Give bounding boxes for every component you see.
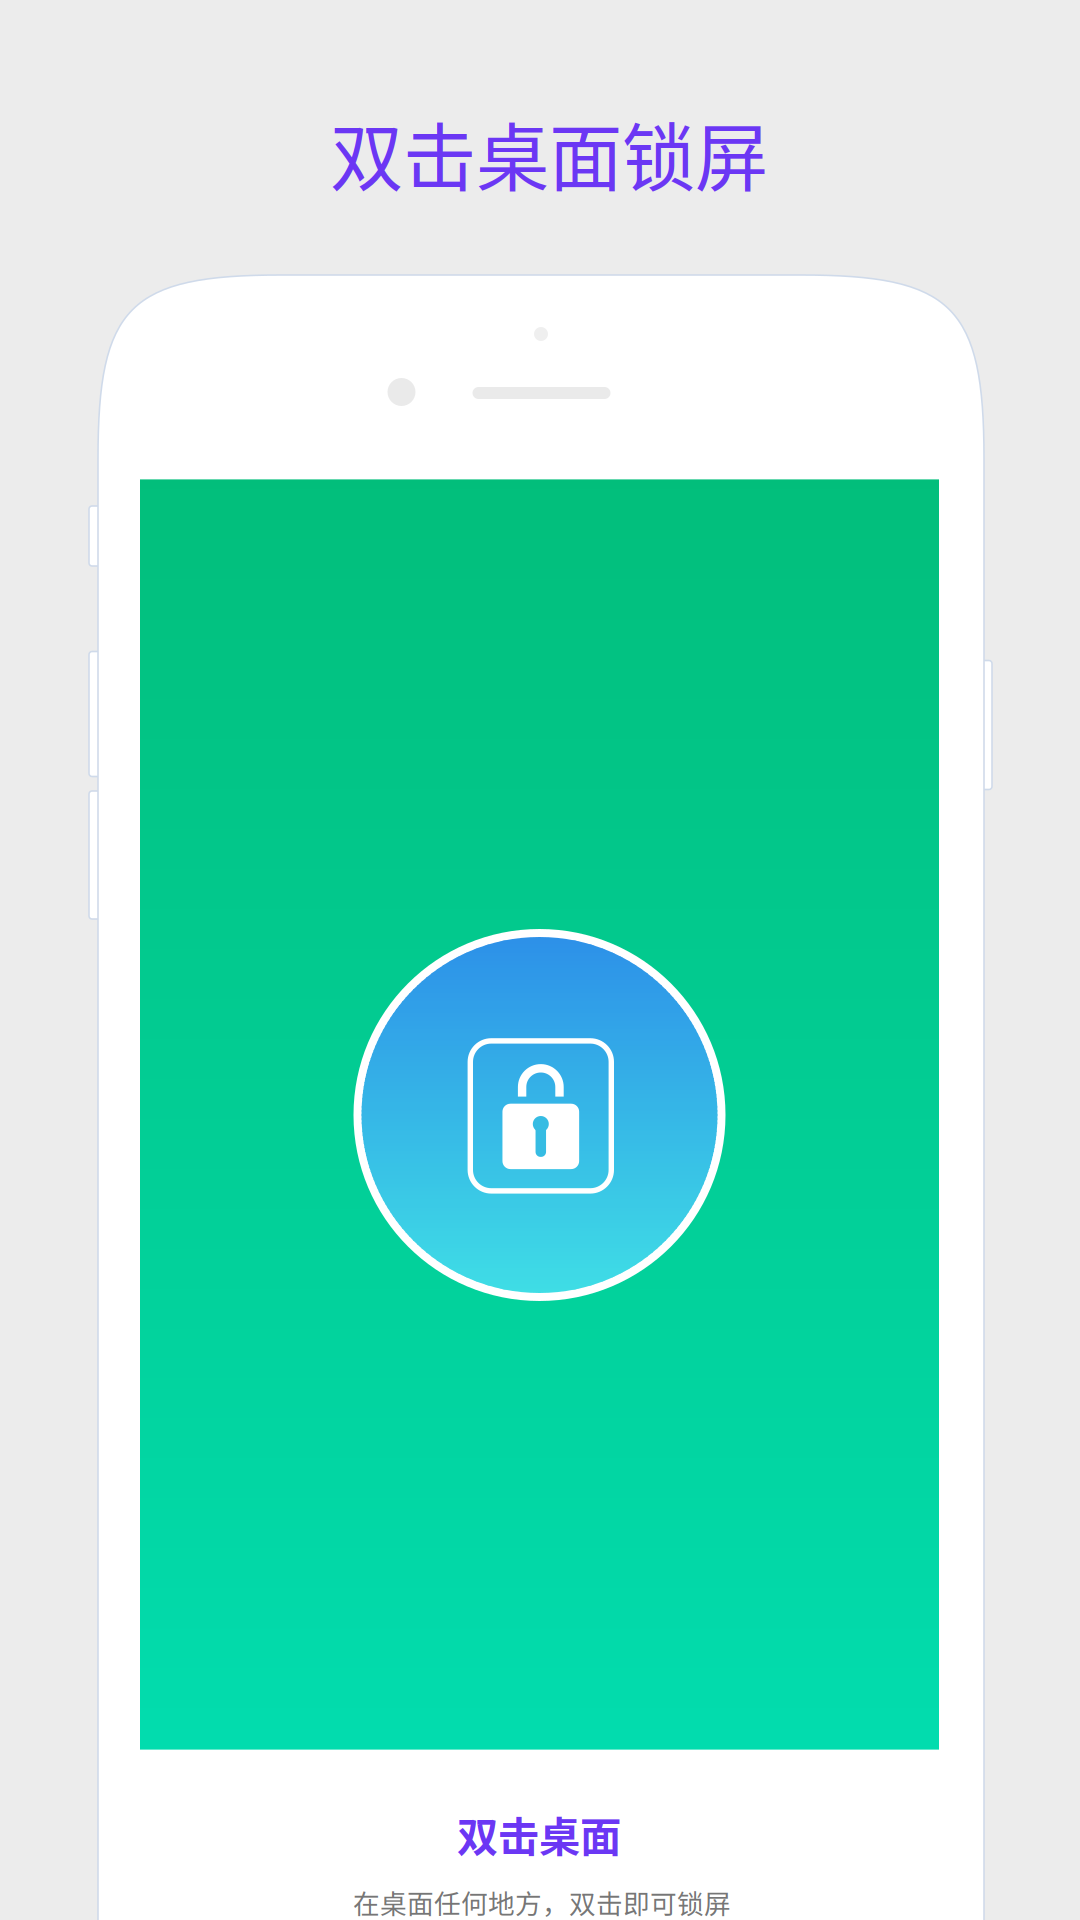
staticText: 双击桌面: [457, 1804, 621, 1864]
staticText: 在桌面任何地方，双击即可锁屏: [353, 1883, 731, 1920]
staticText: 双击桌面锁屏: [330, 100, 768, 206]
button[interactable]: Lock screen: [353, 929, 725, 1301]
